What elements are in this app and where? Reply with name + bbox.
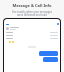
- button[interactable]: [6, 38, 58, 39]
- button[interactable]: [6, 27, 58, 30]
- button[interactable]: [6, 32, 58, 33]
- staticText: See exactly when your messages were deli…: [0, 10, 64, 16]
- button[interactable]: [43, 57, 58, 62]
- button[interactable]: [6, 35, 58, 36]
- button[interactable]: Back: [5, 23, 10, 26]
- button[interactable]: [39, 51, 58, 56]
- staticText: Message & Call Info: [0, 3, 64, 8]
